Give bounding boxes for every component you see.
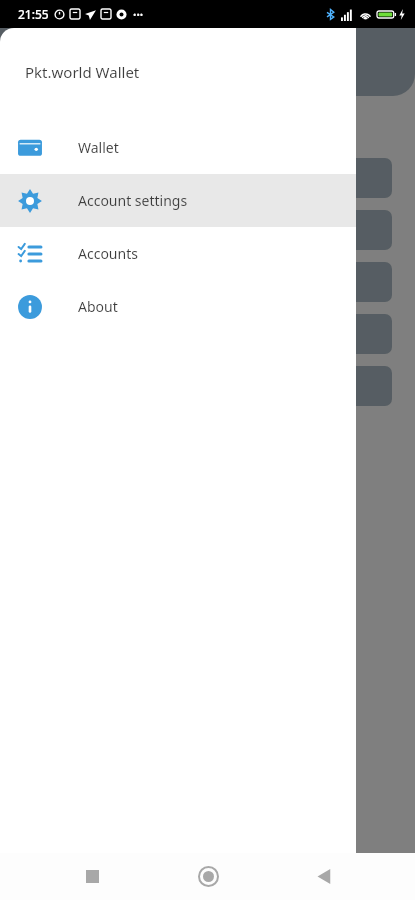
button[interactable]: Back	[299, 853, 347, 900]
button[interactable]	[23, 314, 392, 354]
staticText: •••	[133, 8, 144, 20]
staticText: 21:55	[18, 6, 49, 22]
button[interactable]: Wallet	[0, 121, 356, 174]
button[interactable]	[23, 158, 392, 198]
staticText: Pkt.world Wallet	[25, 62, 140, 82]
button[interactable]: Recent apps	[68, 853, 116, 900]
button[interactable]	[0, 0, 415, 853]
button[interactable]: Home	[184, 853, 232, 900]
button[interactable]: About	[0, 280, 356, 333]
button[interactable]	[23, 366, 392, 406]
staticText: Account settings	[78, 191, 188, 210]
staticText: Accounts	[78, 244, 138, 263]
button[interactable]: Accounts	[0, 227, 356, 280]
button[interactable]: Account settings	[0, 174, 356, 227]
staticText: About	[78, 297, 118, 316]
button[interactable]	[23, 210, 392, 250]
button[interactable]	[23, 262, 392, 302]
staticText: Wallet	[78, 138, 119, 157]
